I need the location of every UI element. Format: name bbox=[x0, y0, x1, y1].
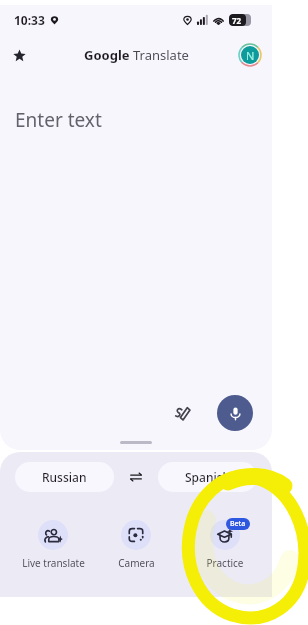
button[interactable]: Saved translations bbox=[5, 41, 33, 69]
button[interactable]: Handwriting bbox=[168, 398, 198, 428]
button[interactable]: Camera bbox=[92, 520, 180, 570]
staticText: Practice bbox=[206, 556, 244, 570]
button[interactable]: Beta bbox=[181, 520, 269, 570]
staticText: 72 bbox=[232, 15, 242, 26]
staticText: Enter text bbox=[15, 107, 102, 133]
staticText: Google bbox=[84, 46, 130, 64]
staticText: Live translate bbox=[22, 556, 85, 570]
button[interactable]: Microphone bbox=[217, 395, 253, 431]
button[interactable]: Spanish bbox=[158, 462, 257, 492]
staticText: Translate bbox=[133, 46, 189, 64]
staticText: Spanish bbox=[185, 469, 231, 485]
button[interactable]: Russian bbox=[15, 462, 114, 492]
staticText: N bbox=[246, 48, 255, 63]
button[interactable]: Swap languages bbox=[121, 462, 151, 492]
button[interactable]: Live translate bbox=[9, 520, 97, 570]
staticText: 10:33 bbox=[14, 12, 45, 28]
staticText: Beta bbox=[230, 519, 246, 529]
staticText: Russian bbox=[42, 469, 87, 485]
button[interactable]: Account bbox=[237, 42, 263, 68]
staticText: Camera bbox=[118, 556, 155, 570]
